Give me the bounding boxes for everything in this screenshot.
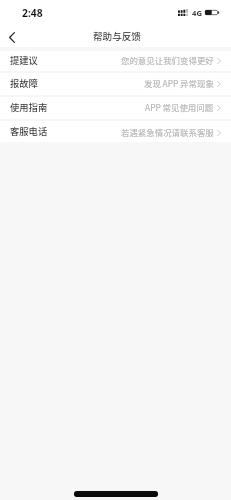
staticText: 2:48 [22,6,43,20]
staticText: APP 常见使用问题 [145,101,214,113]
staticText: 4G [192,8,202,18]
button[interactable]: 返回 [0,23,24,47]
staticText: 客服电话 [10,124,48,137]
staticText: 使用指南 [10,100,48,113]
button[interactable]: 使用指南 [0,97,231,119]
staticText: 您的意见让我们变得更好 [121,54,214,66]
staticText: 提建议 [10,53,38,66]
staticText: 帮助与反馈 [93,29,141,43]
staticText: 若遇紧急情况请联系客服 [121,126,214,138]
staticText: 报故障 [10,76,38,89]
button[interactable]: 客服电话 [0,123,231,142]
button[interactable]: 提建议 [0,51,231,71]
button[interactable]: 报故障 [0,73,231,95]
staticText: 发现 APP 异常现象 [144,77,214,89]
